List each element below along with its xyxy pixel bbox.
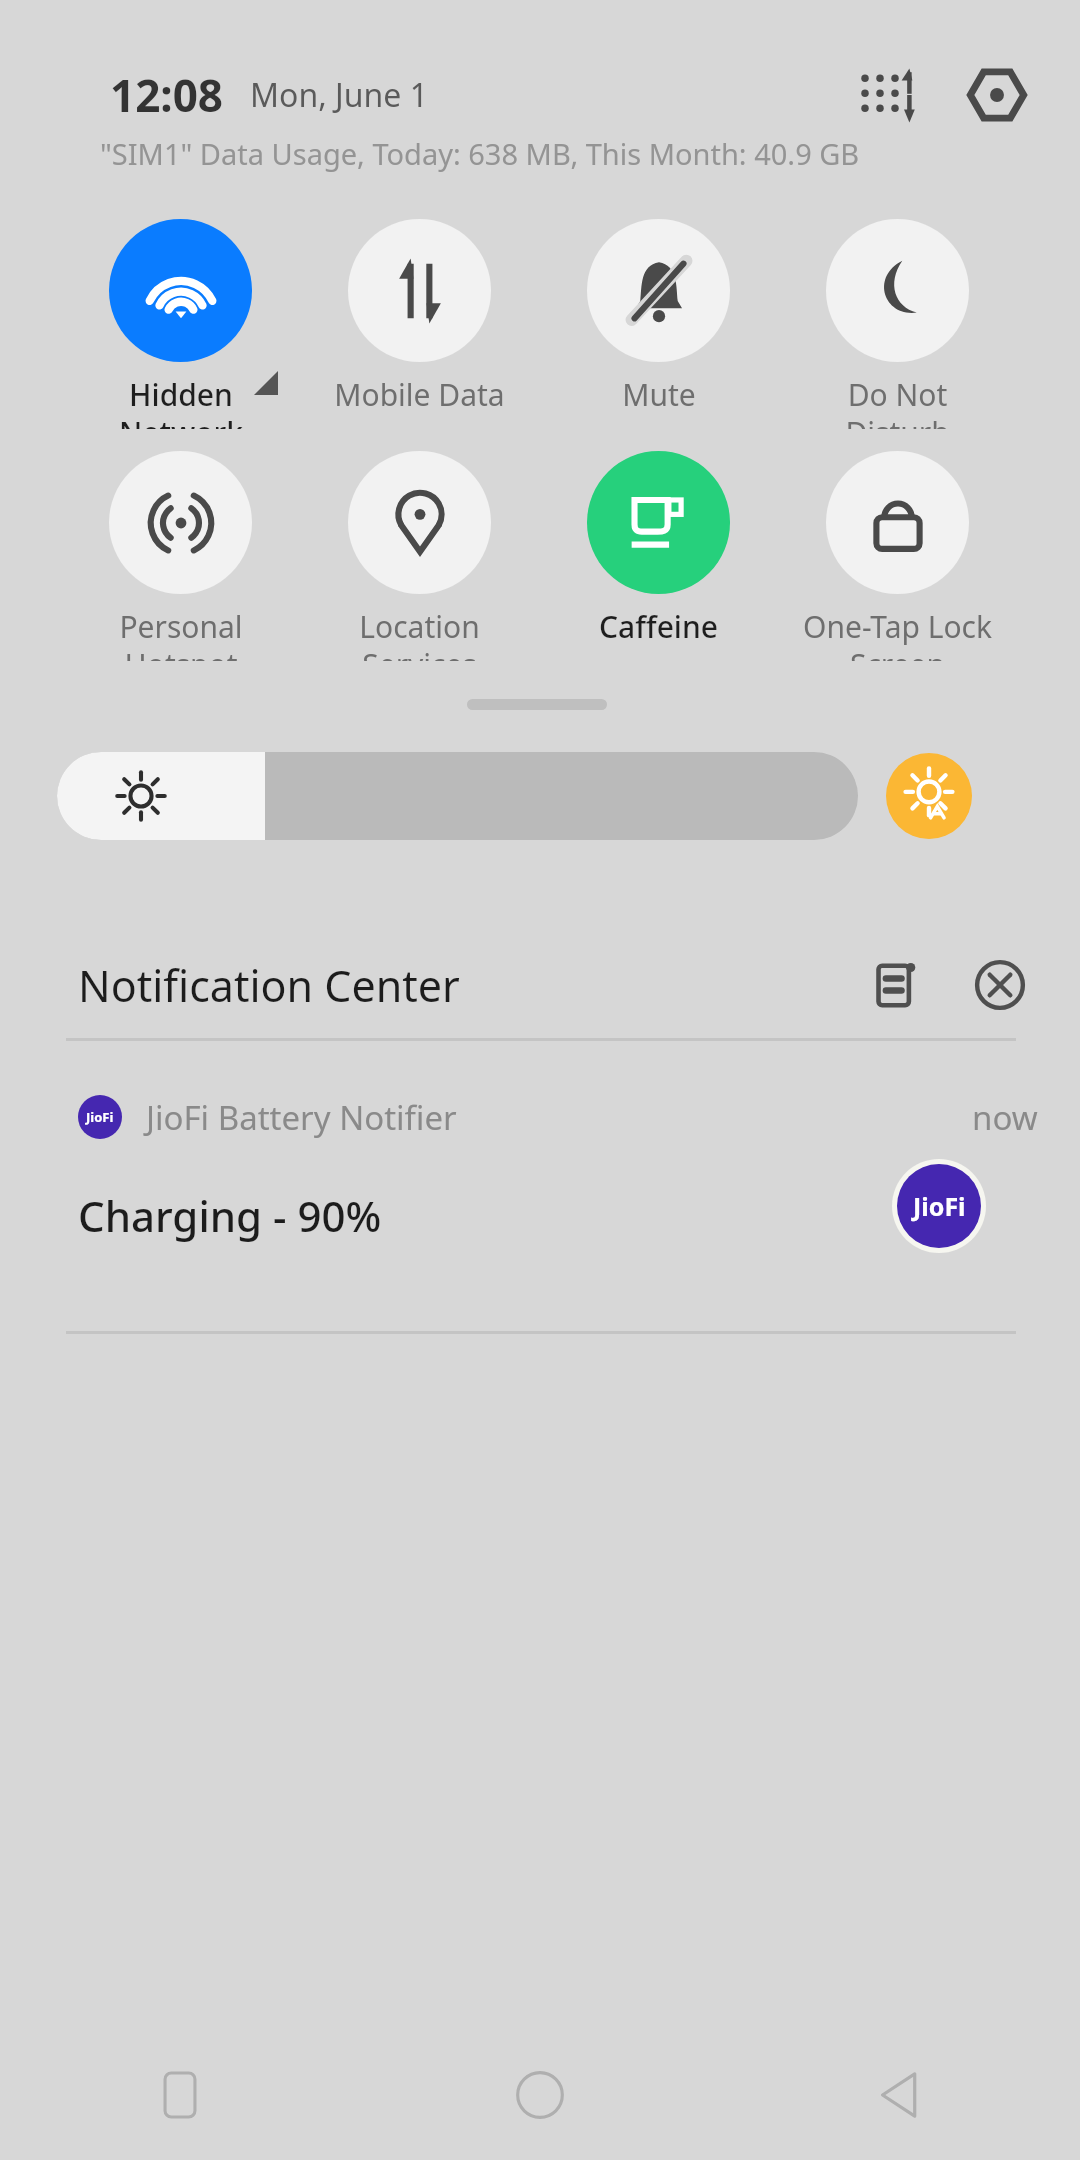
button[interactable]: Brightness [57, 752, 858, 840]
staticText: One-Tap Lock Screen [803, 606, 992, 661]
staticText: JioFi [86, 1108, 114, 1126]
staticText: JioFi [913, 1189, 966, 1223]
staticText: Mute [622, 374, 696, 415]
button[interactable]: Mobile Data [300, 219, 538, 429]
button[interactable]: Personal Hotspot [61, 451, 299, 661]
staticText: 12:08 [110, 65, 224, 125]
button[interactable]: One-Tap Lock Screen [778, 451, 1016, 661]
button[interactable]: Manage notifications [858, 950, 934, 1020]
staticText: Charging - 90% [78, 1187, 382, 1244]
staticText: Notification Center [78, 956, 460, 1015]
button[interactable]: Clear all notifications [962, 950, 1038, 1020]
button[interactable]: Caffeine [539, 451, 777, 661]
staticText: Location Services [359, 606, 480, 661]
button[interactable]: Auto brightness [886, 753, 972, 839]
staticText: Mon, June 1 [250, 73, 429, 117]
button[interactable]: Hidden Network [61, 219, 299, 429]
staticText: now [972, 1095, 1038, 1140]
staticText: JioFi Battery Notifier [146, 1095, 457, 1140]
button[interactable]: Recent apps [0, 2030, 360, 2160]
staticText: Personal Hotspot [119, 606, 243, 661]
button[interactable]: Back [720, 2030, 1080, 2160]
button[interactable]: Edit quick settings [846, 62, 932, 128]
staticText: Do Not Disturb [845, 374, 950, 429]
staticText: Caffeine [599, 606, 718, 647]
staticText: Hidden Network [119, 374, 243, 429]
button[interactable]: Home [360, 2030, 720, 2160]
button[interactable]: JioFi [0, 1087, 1080, 1297]
button[interactable]: Settings [954, 62, 1040, 128]
button[interactable]: Mute [539, 219, 777, 429]
button[interactable]: Location Services [300, 451, 538, 661]
staticText: Mobile Data [334, 374, 505, 415]
button[interactable]: Do Not Disturb [778, 219, 1016, 429]
staticText: "SIM1" Data Usage, Today: 638 MB, This M… [100, 134, 860, 173]
